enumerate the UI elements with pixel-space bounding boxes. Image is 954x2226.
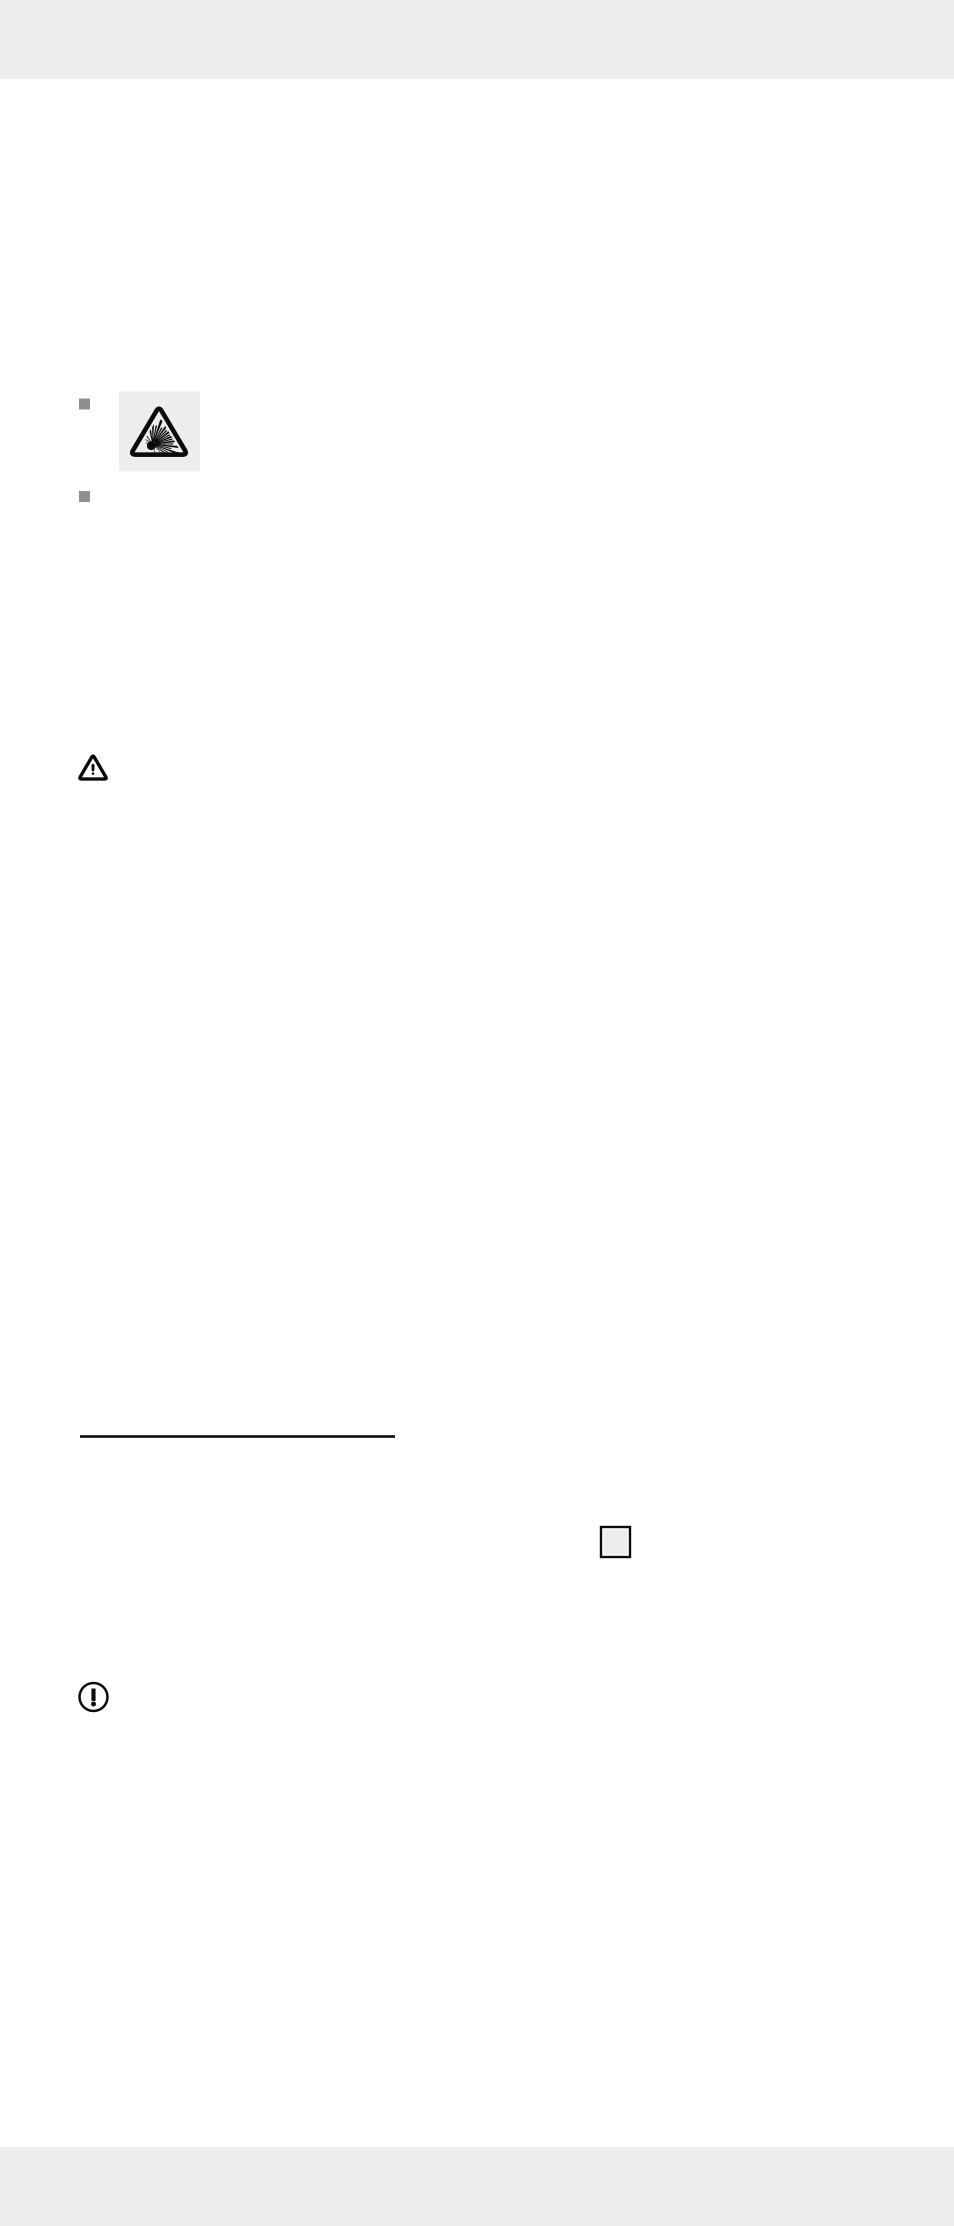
button[interactable]: Warning xyxy=(79,755,107,779)
button[interactable]: Important note xyxy=(79,1683,107,1711)
button[interactable]: Select xyxy=(601,1527,630,1557)
button[interactable]: Explosion hazard xyxy=(119,391,200,471)
